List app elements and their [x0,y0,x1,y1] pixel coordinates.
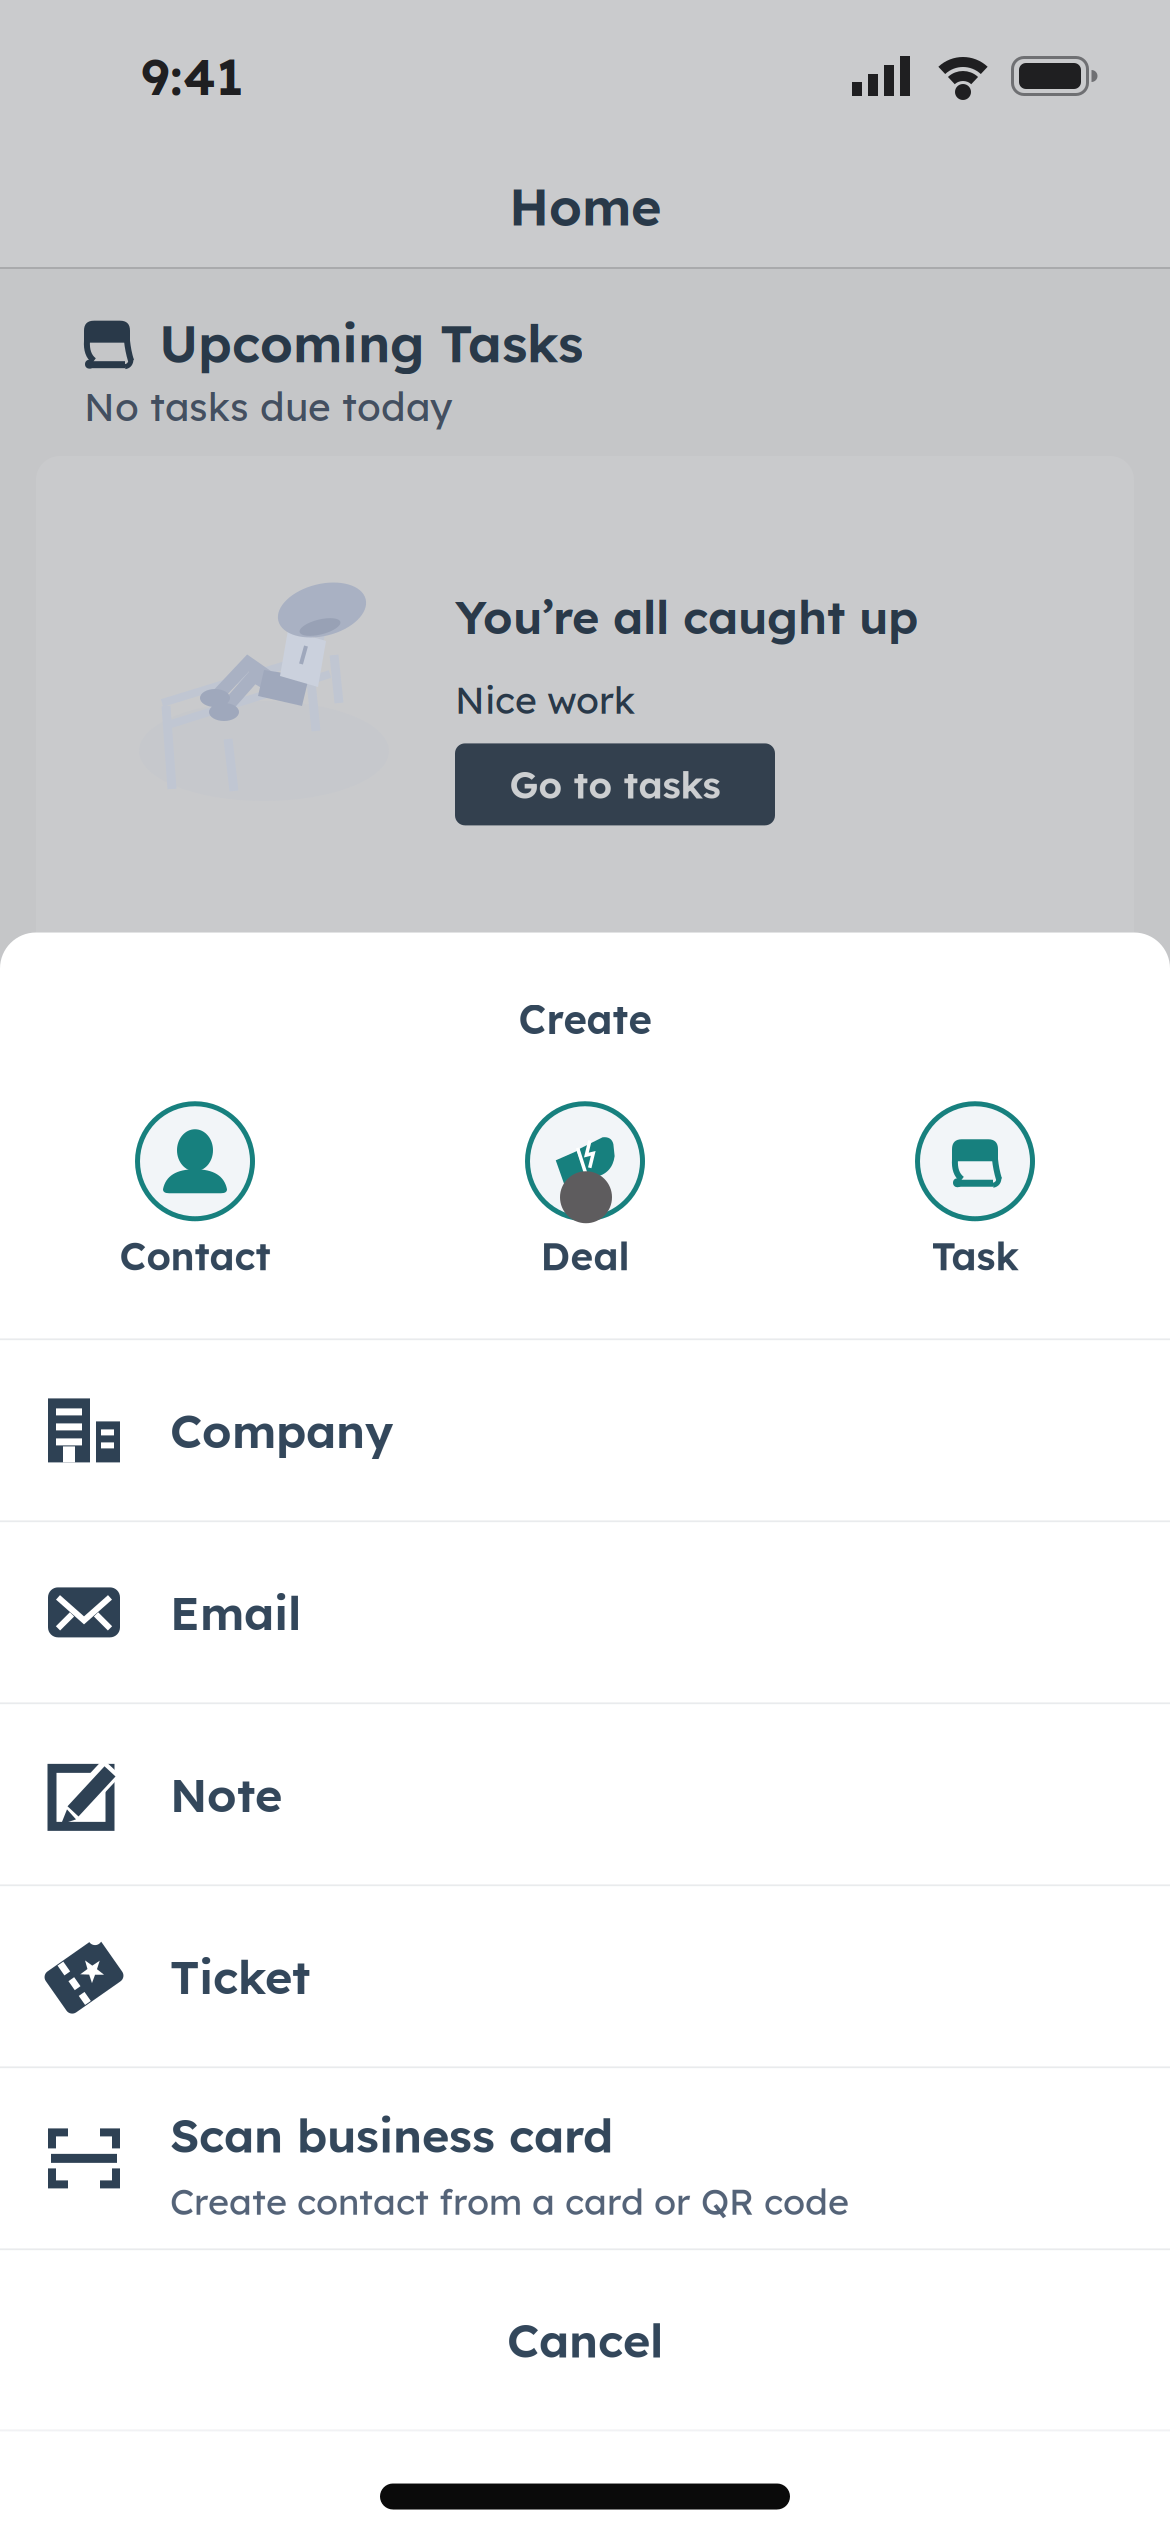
staticText: Scan business card [170,2106,613,2163]
staticText: Contact [119,1232,270,1279]
button[interactable]: Note [0,1704,1170,1884]
button[interactable]: Email [0,1522,1170,1702]
staticText: Go to tasks [509,762,720,807]
button[interactable]: Task [780,1100,1170,1279]
button[interactable]: Go to tasks [455,743,775,825]
staticText: Ticket [170,1948,310,2005]
button[interactable]: Ticket [0,1886,1170,2066]
button[interactable]: Deal [390,1100,780,1279]
staticText: Create contact from a card or QR code [170,2179,849,2223]
staticText: Company [170,1402,393,1459]
staticText: 9:41 [141,45,243,107]
staticText: Cancel [507,2311,663,2368]
button[interactable]: Scan business card [0,2068,1170,2248]
staticText: Create [518,994,651,1043]
button[interactable]: Cancel [0,2250,1170,2429]
staticText: Note [170,1766,282,1823]
staticText: Nice work [455,677,635,722]
staticText: Task [931,1232,1018,1279]
staticText: Deal [540,1232,629,1279]
button[interactable]: Company [0,1340,1170,1520]
staticText: You’re all caught up [455,588,918,645]
staticText: No tasks due today [84,383,452,430]
staticText: Home [509,174,661,238]
staticText: Email [170,1584,301,1641]
button[interactable]: Contact [0,1100,390,1279]
staticText: Upcoming Tasks [159,311,583,374]
